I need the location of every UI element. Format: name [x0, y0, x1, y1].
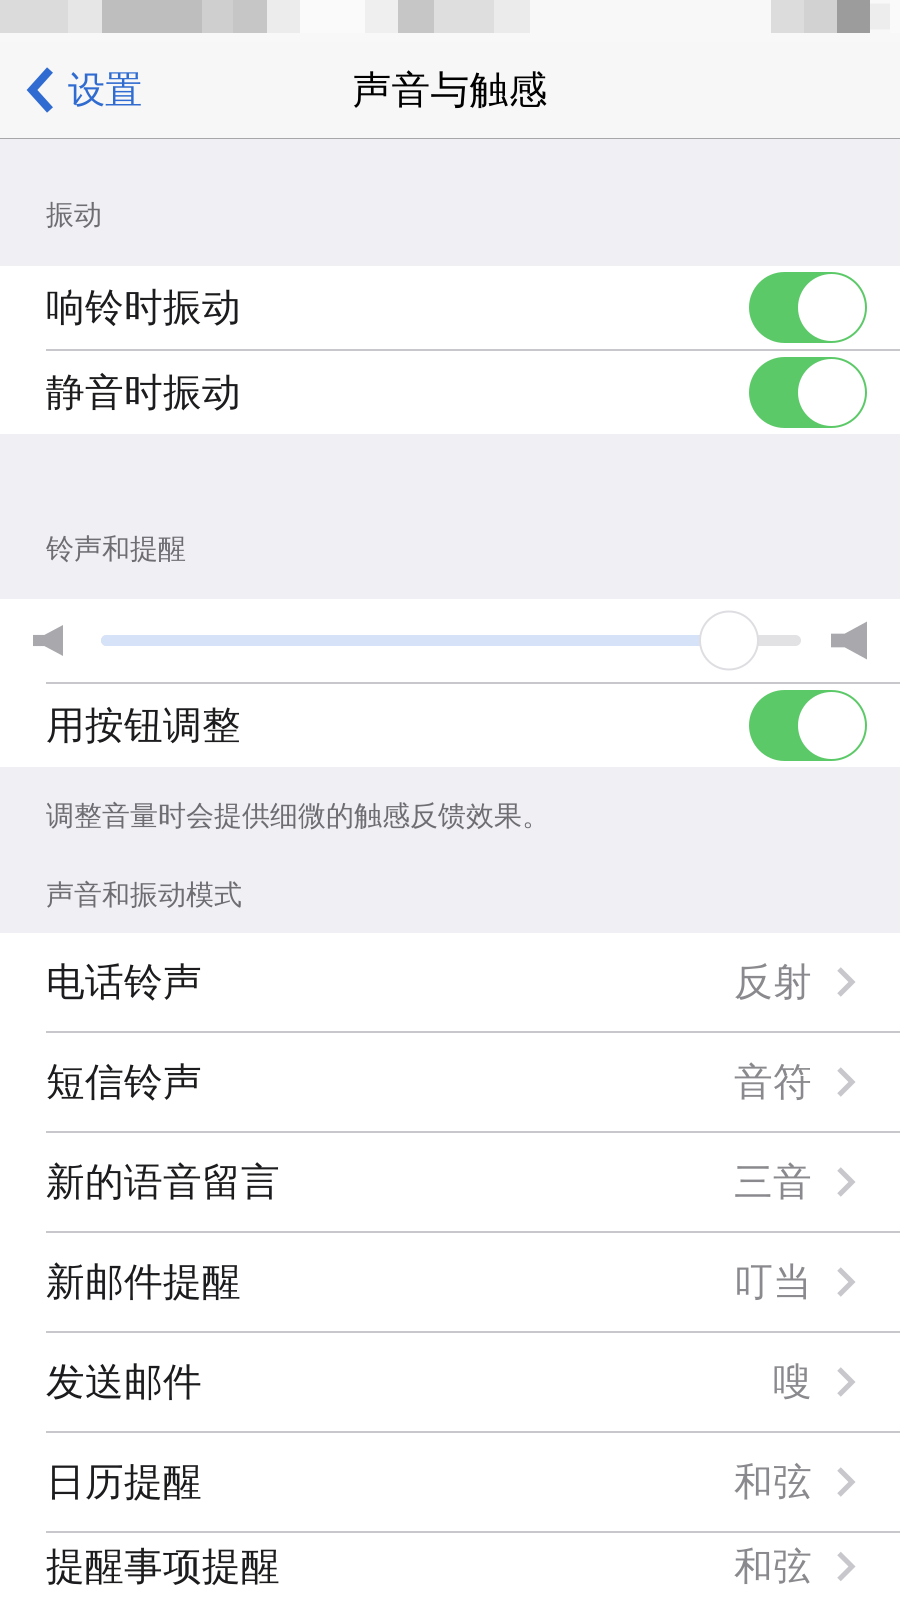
button[interactable]: 提醒事项提醒 [0, 1533, 900, 1600]
staticText: 振动 [46, 198, 102, 232]
button[interactable]: 设置 [0, 42, 162, 138]
staticText: 静音时振动 [46, 369, 241, 416]
staticText: 铃声和提醒 [46, 532, 186, 566]
staticText: 发送邮件 [46, 1358, 202, 1406]
staticText: 和弦 [734, 1543, 812, 1590]
staticText: 反射 [734, 958, 812, 1006]
staticText: 音符 [734, 1058, 812, 1106]
staticText: 响铃时振动 [46, 284, 241, 331]
staticText: 新的语音留言 [46, 1158, 280, 1206]
staticText: 日历提醒 [46, 1458, 202, 1506]
button[interactable]: 响铃时振动 [0, 266, 900, 349]
staticText: 嗖 [773, 1358, 812, 1406]
staticText: 用按钮调整 [46, 702, 241, 749]
button[interactable]: 短信铃声 [0, 1033, 900, 1131]
staticText: 提醒事项提醒 [46, 1543, 280, 1590]
button[interactable]: 日历提醒 [0, 1433, 900, 1531]
button[interactable]: 用按钮调整 [0, 684, 900, 767]
staticText: 设置 [68, 67, 142, 113]
staticText: 新邮件提醒 [46, 1258, 241, 1306]
staticText: 和弦 [734, 1458, 812, 1506]
button[interactable]: 新邮件提醒 [0, 1233, 900, 1331]
button[interactable]: 发送邮件 [0, 1333, 900, 1431]
staticText: 声音和振动模式 [46, 878, 242, 912]
button[interactable]: 静音时振动 [0, 351, 900, 434]
staticText: 三音 [734, 1158, 812, 1206]
staticText: 声音与触感 [352, 66, 547, 114]
button[interactable]: 新的语音留言 [0, 1133, 900, 1231]
staticText: 电话铃声 [46, 958, 202, 1006]
button[interactable]: 电话铃声 [0, 933, 900, 1031]
staticText: 叮当 [734, 1258, 812, 1306]
staticText: 短信铃声 [46, 1058, 202, 1106]
staticText: 调整音量时会提供细微的触感反馈效果。 [46, 799, 550, 833]
